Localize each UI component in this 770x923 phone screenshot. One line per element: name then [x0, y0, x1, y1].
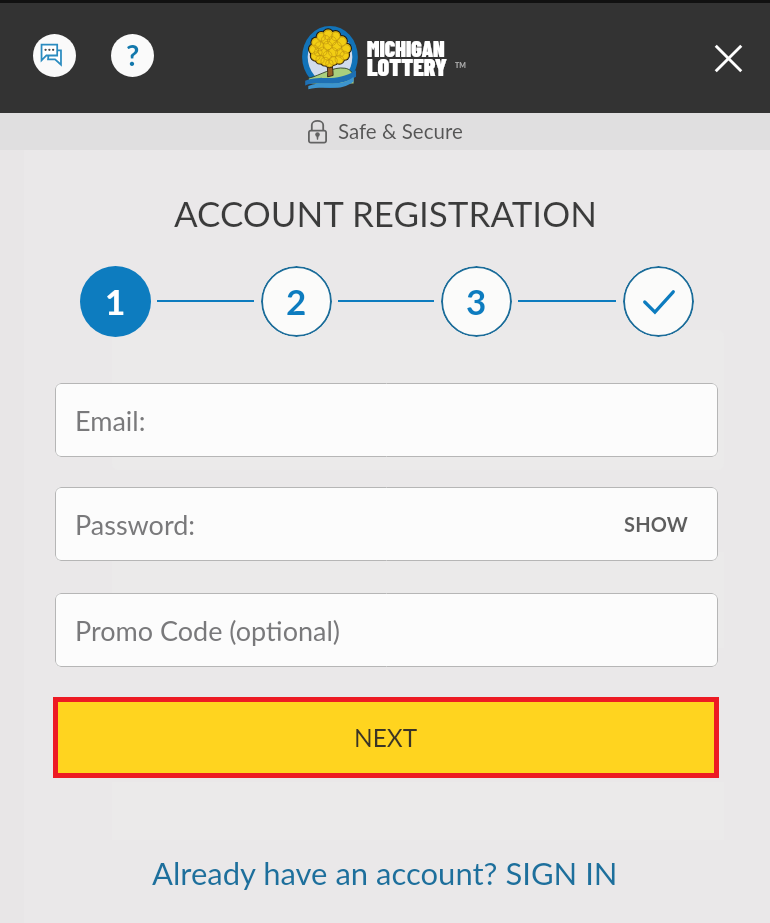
button[interactable]: Close	[704, 34, 752, 82]
button[interactable]: 3	[441, 266, 512, 337]
button[interactable]: Already have an account? SIGN IN	[146, 850, 624, 895]
button[interactable]: Promo Code (optional)	[55, 593, 718, 667]
button[interactable]: 2	[261, 266, 332, 337]
staticText: TM	[455, 61, 466, 69]
staticText: LOTTERY	[367, 52, 447, 81]
staticText: 3	[466, 280, 487, 322]
button[interactable]: Help	[111, 34, 154, 77]
staticText: SHOW	[624, 512, 689, 536]
staticText: ACCOUNT REGISTRATION	[174, 192, 597, 234]
staticText: 1	[105, 280, 126, 322]
button[interactable]: NEXT	[58, 702, 714, 773]
staticText: Password:	[75, 508, 196, 540]
staticText: MICHIGAN	[367, 35, 445, 61]
button[interactable]: 1	[80, 266, 151, 337]
staticText: NEXT	[354, 723, 418, 752]
staticText: Safe & Secure	[338, 119, 463, 144]
staticText: Email:	[75, 404, 146, 436]
staticText: 2	[286, 280, 307, 322]
button[interactable]: Chat	[33, 34, 76, 77]
button[interactable]: Completed	[623, 266, 694, 337]
staticText: ?	[126, 37, 140, 72]
button[interactable]: Password:	[55, 487, 718, 561]
staticText: Promo Code (optional)	[75, 614, 341, 646]
button[interactable]: Email:	[55, 383, 718, 457]
